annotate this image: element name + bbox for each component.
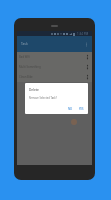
staticText: Multi Something bbox=[19, 65, 41, 69]
staticText: Bad Wifi bbox=[19, 55, 30, 59]
staticText: Task bbox=[21, 42, 28, 46]
button[interactable]: YES bbox=[78, 106, 85, 112]
button[interactable]: Row options bbox=[86, 54, 89, 60]
button[interactable]: NO bbox=[67, 106, 74, 112]
button[interactable]: Clean Bike bbox=[17, 72, 92, 82]
staticText: Remove Selected Task? bbox=[29, 96, 57, 100]
staticText: Clean Bike bbox=[19, 75, 33, 79]
button[interactable]: Add task bbox=[71, 119, 77, 125]
staticText: Delete bbox=[29, 88, 39, 92]
button[interactable]: Bad Wifi bbox=[17, 52, 92, 62]
staticText: 1:34 PM bbox=[77, 32, 89, 36]
button[interactable]: Multi Something bbox=[17, 62, 92, 72]
button[interactable]: More options bbox=[85, 42, 88, 47]
button[interactable]: Row options bbox=[86, 64, 89, 70]
button[interactable]: Row options bbox=[86, 74, 89, 80]
